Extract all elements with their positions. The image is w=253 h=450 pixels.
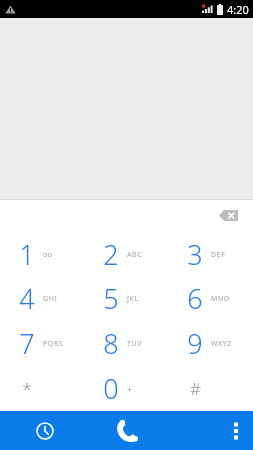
staticText: JKL xyxy=(127,294,139,304)
button[interactable]: 3 xyxy=(169,232,253,276)
button[interactable]: 1 xyxy=(0,232,85,276)
staticText: + xyxy=(127,383,133,395)
staticText: 1 xyxy=(19,236,35,273)
staticText: 4:20 xyxy=(227,2,249,17)
button[interactable]: * xyxy=(0,366,85,411)
button[interactable]: Call xyxy=(85,411,169,450)
staticText: PQRS xyxy=(43,339,64,349)
staticText: ABC xyxy=(127,250,143,260)
button[interactable]: 7 xyxy=(0,321,85,366)
staticText: 9 xyxy=(187,325,203,362)
staticText: 4 xyxy=(19,280,35,317)
button[interactable]: More options xyxy=(169,411,253,450)
staticText: 2 xyxy=(103,236,119,273)
button[interactable]: 2 xyxy=(85,232,169,276)
button[interactable]: 6 xyxy=(169,276,253,321)
button[interactable]: Backspace xyxy=(211,202,245,228)
staticText: TUV xyxy=(127,339,143,349)
staticText: MNO xyxy=(211,294,230,304)
staticText: GHI xyxy=(43,294,58,304)
button[interactable]: Recent calls xyxy=(0,411,85,450)
staticText: # xyxy=(190,377,201,400)
button[interactable]: 4 xyxy=(0,276,85,321)
staticText: 3 xyxy=(187,236,203,273)
staticText: 5 xyxy=(103,280,119,317)
button[interactable]: 9 xyxy=(169,321,253,366)
staticText: WXYZ xyxy=(211,339,232,349)
button[interactable]: 8 xyxy=(85,321,169,366)
staticText: * xyxy=(22,377,32,400)
staticText: 8 xyxy=(103,325,119,362)
staticText: 7 xyxy=(19,325,35,362)
button[interactable]: 0 xyxy=(85,366,169,411)
button[interactable]: # xyxy=(169,366,253,411)
staticText: oo xyxy=(43,250,53,260)
staticText: 6 xyxy=(187,280,203,317)
button[interactable]: 5 xyxy=(85,276,169,321)
staticText: DEF xyxy=(211,250,226,260)
staticText: 0 xyxy=(103,370,119,407)
